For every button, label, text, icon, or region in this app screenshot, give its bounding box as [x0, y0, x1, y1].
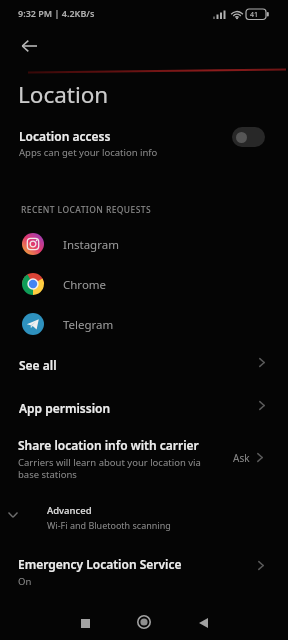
staticText: See all — [19, 357, 57, 373]
button[interactable]: Telegram — [0, 304, 288, 344]
staticText: Instagram — [63, 237, 119, 253]
button[interactable] — [125, 604, 163, 640]
staticText: 41 — [250, 10, 259, 20]
button[interactable]: See all — [0, 348, 288, 378]
button[interactable] — [66, 604, 104, 640]
staticText: Emergency Location Service — [18, 556, 182, 572]
button[interactable]: App permission — [0, 391, 288, 421]
staticText: Advanced — [47, 504, 92, 517]
staticText: Chrome — [63, 277, 107, 293]
staticText: Ask — [233, 451, 250, 465]
button[interactable]: Share location info with carrier — [0, 430, 288, 485]
staticText: Carriers will learn about your location … — [18, 456, 201, 481]
button[interactable]: Instagram — [0, 224, 288, 264]
button[interactable]: Chrome — [0, 264, 288, 304]
staticText: 9:32 PM | 4.2KB/s — [18, 7, 95, 19]
staticText: RECENT LOCATION REQUESTS — [21, 204, 151, 216]
button[interactable] — [232, 127, 265, 147]
staticText: Apps can get your location info — [19, 146, 158, 159]
button[interactable] — [14, 34, 46, 58]
button[interactable]: Advanced — [0, 498, 288, 532]
button[interactable]: Location access — [0, 118, 288, 158]
staticText: Wi-Fi and Bluetooth scanning — [47, 519, 171, 531]
staticText: Telegram — [63, 317, 114, 333]
staticText: Location — [18, 79, 109, 110]
button[interactable] — [184, 604, 222, 640]
staticText: On — [18, 575, 32, 588]
staticText: App permission — [19, 400, 111, 416]
staticText: Location access — [19, 128, 111, 144]
staticText: Share location info with carrier — [18, 437, 199, 453]
button[interactable]: Emergency Location Service — [0, 548, 288, 590]
